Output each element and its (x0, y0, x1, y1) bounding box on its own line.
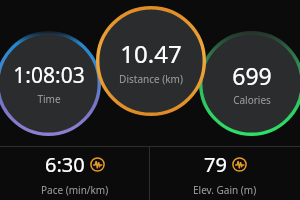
staticText: 1:08:03 (13, 61, 85, 90)
other: Heart rate source (232, 157, 247, 172)
button[interactable]: Calories, 699 (199, 31, 300, 136)
staticText: Time (37, 92, 61, 106)
other: Heart rate source (90, 157, 105, 172)
staticText: 6:30 (45, 151, 85, 178)
staticText: Elev. Gain (m) (193, 183, 257, 197)
button[interactable]: Time, 1 hour 8 minutes 3 seconds (0, 31, 101, 136)
button[interactable]: Distance, 10.47 kilometres (96, 6, 206, 116)
staticText: 10.47 (120, 37, 182, 70)
staticText: 79 (204, 151, 227, 178)
staticText: Distance (km) (119, 72, 183, 86)
button[interactable]: 6:30 (0, 147, 149, 200)
staticText: Pace (min/km) (41, 183, 109, 197)
button[interactable]: 79 (150, 147, 300, 200)
staticText: 699 (232, 60, 272, 91)
staticText: Calories (233, 93, 271, 107)
